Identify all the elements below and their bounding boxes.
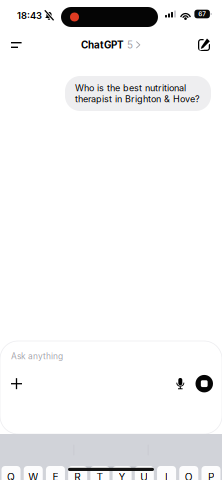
- staticText: Ask anything: [11, 351, 63, 361]
- staticText: T: [96, 471, 103, 480]
- button[interactable]: I: [157, 466, 176, 480]
- button[interactable]: Stop: [190, 374, 222, 393]
- staticText: E: [52, 471, 58, 480]
- button[interactable]: Sidebar: [0, 34, 31, 56]
- staticText: 67: [198, 10, 206, 18]
- staticText: I: [165, 471, 168, 480]
- staticText: O: [185, 471, 193, 480]
- staticText: W: [28, 471, 38, 480]
- button[interactable]: R: [68, 466, 87, 480]
- button[interactable]: Q: [1, 466, 20, 480]
- staticText: ChatGPT: [81, 39, 124, 51]
- button[interactable]: U: [135, 466, 154, 480]
- button[interactable]: P: [201, 466, 220, 480]
- button[interactable]: Dictate: [166, 375, 190, 393]
- button[interactable]: Add attachment: [0, 372, 33, 395]
- staticText: U: [140, 471, 148, 480]
- staticText: Q: [7, 471, 15, 480]
- staticText: 5: [127, 39, 133, 51]
- staticText: R: [74, 471, 81, 480]
- staticText: P: [208, 471, 214, 480]
- button[interactable]: ChatGPT: [75, 33, 147, 57]
- staticText: Y: [119, 471, 126, 480]
- button[interactable]: Y: [113, 466, 132, 480]
- button[interactable]: W: [24, 466, 43, 480]
- staticText: Who is the best nutritional therapist in…: [75, 82, 200, 104]
- button[interactable]: E: [46, 466, 65, 480]
- button[interactable]: T: [90, 466, 109, 480]
- staticText: 18:43: [17, 10, 42, 21]
- button[interactable]: O: [179, 466, 198, 480]
- button[interactable]: New chat: [189, 32, 222, 58]
